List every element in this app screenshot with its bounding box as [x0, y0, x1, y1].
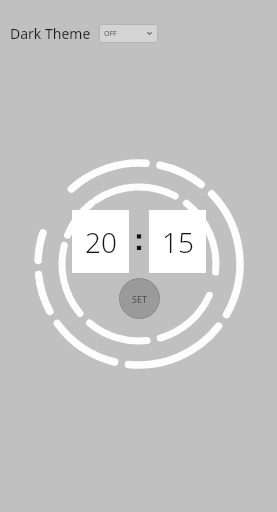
button[interactable]: 15 [149, 210, 206, 273]
staticText: Dark Theme [10, 24, 91, 43]
button[interactable]: Set time [119, 278, 160, 319]
staticText: 15 [162, 223, 194, 261]
staticText: SET [132, 293, 147, 305]
staticText: OFF [104, 29, 117, 39]
staticText: 20 [85, 223, 117, 261]
button[interactable]: 20 [72, 210, 129, 273]
button[interactable]: OFF [99, 24, 158, 43]
